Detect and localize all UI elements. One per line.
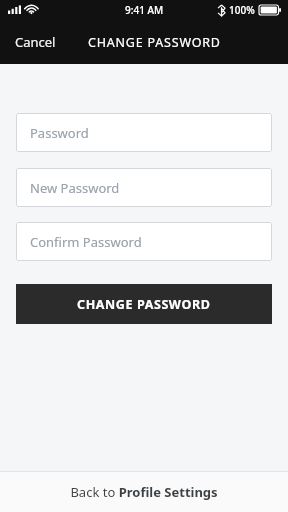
- button[interactable]: Cancel: [0, 23, 71, 61]
- staticText: CHANGE PASSWORD: [77, 296, 211, 313]
- staticText: CHANGE PASSWORD: [88, 34, 221, 51]
- staticText: New Password: [30, 179, 120, 197]
- staticText: Cancel: [15, 33, 56, 51]
- button[interactable]: New Password: [16, 168, 272, 207]
- button[interactable]: CHANGE PASSWORD: [16, 284, 272, 324]
- staticText: Password: [30, 124, 89, 142]
- staticText: Confirm Password: [30, 233, 142, 251]
- button[interactable]: Password: [16, 113, 272, 152]
- staticText: Back to Profile Settings: [70, 483, 218, 501]
- staticText: 100%: [229, 3, 255, 17]
- button[interactable]: Back to Profile Settings: [0, 472, 288, 512]
- staticText: 9:41 AM: [125, 3, 164, 17]
- button[interactable]: Confirm Password: [16, 222, 272, 261]
